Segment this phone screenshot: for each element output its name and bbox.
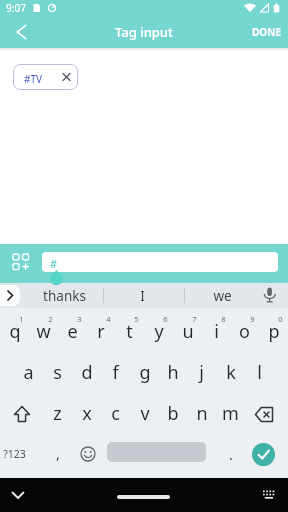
staticText: thanks <box>43 287 86 305</box>
button[interactable]: DONE <box>245 22 287 42</box>
button[interactable]: , <box>43 433 72 473</box>
button[interactable]: . <box>216 434 245 474</box>
button[interactable]: q <box>0 311 29 352</box>
button[interactable] <box>8 19 34 45</box>
staticText: i <box>214 319 219 344</box>
button[interactable]: n <box>187 392 216 435</box>
staticText: h <box>167 360 179 385</box>
button[interactable]: g <box>130 351 159 394</box>
button[interactable]: x <box>72 392 101 435</box>
staticText: d <box>81 360 93 385</box>
button[interactable]: v <box>130 392 159 435</box>
button[interactable]: j <box>187 351 216 394</box>
button[interactable] <box>107 442 206 462</box>
staticText: 9:07 <box>6 1 26 15</box>
staticText: 9 <box>250 314 255 324</box>
button[interactable]: e <box>58 311 87 352</box>
staticText: 7 <box>192 314 197 324</box>
staticText: Tag input <box>115 23 173 41</box>
button[interactable] <box>0 285 20 306</box>
button[interactable]: thanks <box>34 285 94 306</box>
staticText: w <box>36 319 51 344</box>
staticText: e <box>67 319 78 344</box>
staticText: b <box>167 401 179 426</box>
staticText: y <box>154 319 164 344</box>
button[interactable]: t <box>115 311 144 352</box>
staticText: 8 <box>221 314 226 324</box>
staticText: s <box>53 360 62 385</box>
staticText: l <box>257 360 262 385</box>
button[interactable]: I <box>112 285 172 306</box>
staticText: p <box>268 319 280 344</box>
button[interactable]: f <box>101 351 130 394</box>
button[interactable]: w <box>29 311 58 352</box>
staticText: 6 <box>163 314 168 324</box>
staticText: x <box>82 401 92 426</box>
staticText: j <box>199 360 204 385</box>
button[interactable] <box>258 283 282 308</box>
staticText: ?123 <box>3 447 26 461</box>
staticText: a <box>23 360 34 385</box>
staticText: o <box>239 319 250 344</box>
staticText: 4 <box>106 314 111 324</box>
staticText: we <box>213 287 232 305</box>
staticText: n <box>196 401 208 426</box>
staticText: m <box>222 401 239 426</box>
button[interactable]: r <box>86 311 115 352</box>
button[interactable] <box>7 393 37 435</box>
staticText: v <box>140 401 150 426</box>
button[interactable]: z <box>43 392 72 435</box>
staticText: t <box>126 319 133 344</box>
staticText: 1 <box>19 314 24 324</box>
button[interactable]: o <box>230 311 259 352</box>
button[interactable] <box>252 443 275 466</box>
button[interactable]: c <box>101 392 130 435</box>
staticText: q <box>9 319 21 344</box>
staticText: k <box>226 360 236 385</box>
staticText: DONE <box>252 25 281 39</box>
button[interactable] <box>251 393 283 435</box>
staticText: g <box>139 360 151 385</box>
button[interactable]: p <box>259 311 288 352</box>
staticText: r <box>97 319 105 344</box>
button[interactable]: l <box>245 351 274 394</box>
button[interactable] <box>6 485 30 507</box>
button[interactable] <box>256 484 282 508</box>
button[interactable]: ?123 <box>0 434 30 474</box>
button[interactable]: # <box>42 252 278 272</box>
button[interactable]: #TV <box>13 64 78 90</box>
button[interactable]: b <box>158 392 187 435</box>
staticText: c <box>111 401 120 426</box>
button[interactable]: k <box>216 351 245 394</box>
button[interactable] <box>75 441 101 467</box>
button[interactable] <box>9 250 35 276</box>
button[interactable]: y <box>144 311 173 352</box>
button[interactable]: u <box>173 311 202 352</box>
staticText: f <box>112 360 119 385</box>
button[interactable]: m <box>216 392 245 435</box>
staticText: u <box>182 319 194 344</box>
staticText: z <box>53 401 62 426</box>
staticText: #TV <box>24 72 43 86</box>
button[interactable]: s <box>43 351 72 394</box>
staticText: 5 <box>134 314 139 324</box>
staticText: I <box>140 287 145 305</box>
button[interactable]: i <box>202 311 231 352</box>
staticText: 2 <box>48 314 53 324</box>
staticText: . <box>229 445 233 464</box>
staticText: 0 <box>278 314 283 324</box>
button[interactable] <box>117 495 170 499</box>
button[interactable]: we <box>192 285 252 306</box>
staticText: , <box>56 444 60 463</box>
staticText: 3 <box>77 314 82 324</box>
button[interactable]: d <box>72 351 101 394</box>
button[interactable]: h <box>158 351 187 394</box>
staticText: # <box>50 256 58 271</box>
button[interactable]: a <box>14 351 43 394</box>
